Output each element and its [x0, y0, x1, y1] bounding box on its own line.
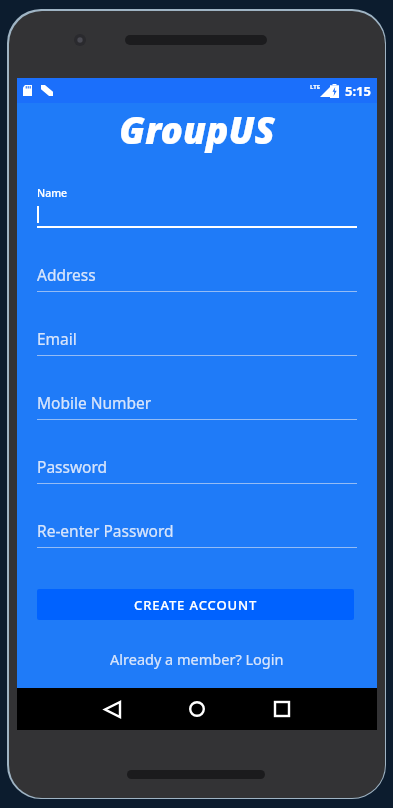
button[interactable]: CREATE ACCOUNT: [37, 589, 354, 620]
staticText: Password: [37, 456, 108, 477]
staticText: 5:15: [345, 82, 371, 100]
staticText: CREATE ACCOUNT: [134, 596, 258, 614]
button[interactable]: Mobile Number: [37, 376, 357, 420]
staticText: LTE: [310, 83, 321, 91]
button[interactable]: Home: [172, 688, 222, 730]
button[interactable]: Password: [37, 440, 357, 484]
staticText: GroupUS: [119, 104, 275, 154]
staticText: Re-enter Password: [37, 520, 174, 541]
button[interactable]: Re-enter Password: [37, 504, 357, 548]
staticText: Name: [37, 186, 68, 200]
staticText: Address: [37, 264, 96, 285]
staticText: Already a member? Login: [110, 649, 284, 669]
button[interactable]: Address: [37, 248, 357, 292]
staticText: Email: [37, 328, 77, 349]
staticText: Mobile Number: [37, 392, 152, 413]
button[interactable]: Back: [87, 688, 137, 730]
button[interactable]: Name: [37, 184, 357, 228]
button[interactable]: Already a member? Login: [17, 644, 377, 674]
button[interactable]: Recent apps: [257, 688, 307, 730]
button[interactable]: Email: [37, 312, 357, 356]
